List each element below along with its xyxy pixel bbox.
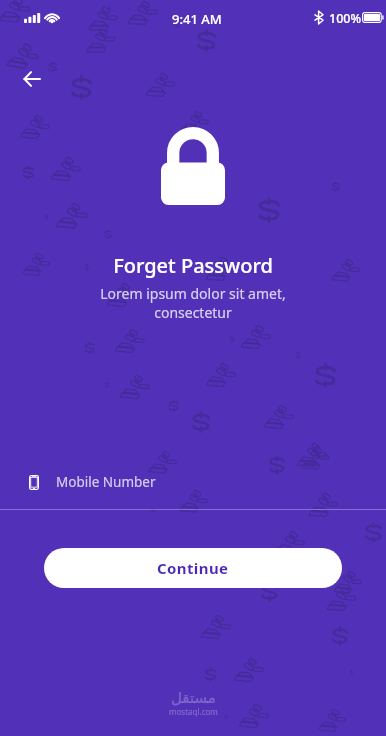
staticText: Mobile Number xyxy=(56,473,156,491)
staticText: Continue xyxy=(157,558,229,578)
button[interactable]: Mobile Number xyxy=(29,466,386,498)
staticText: mostaql.com xyxy=(169,706,218,717)
staticText: 9:41 AM xyxy=(172,10,222,28)
staticText: 100% xyxy=(329,10,362,27)
staticText: مستقل xyxy=(171,689,216,706)
staticText: Lorem ipsum dolor sit amet, consectetur xyxy=(0,284,386,322)
button[interactable]: Back xyxy=(12,59,52,99)
staticText: Forget Password xyxy=(0,252,386,279)
button[interactable]: Continue xyxy=(44,548,342,588)
